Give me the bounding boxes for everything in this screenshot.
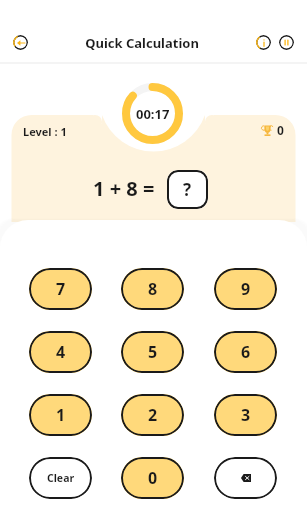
staticText: 8 — [148, 278, 158, 300]
button[interactable]: Info — [256, 35, 271, 50]
staticText: 9 — [241, 278, 251, 300]
button[interactable]: 9 — [214, 268, 277, 310]
button[interactable]: Back — [13, 35, 28, 50]
button[interactable]: 2 — [121, 394, 184, 436]
button[interactable]: 5 — [121, 331, 184, 373]
staticText: 5 — [148, 341, 158, 363]
button[interactable]: Pause — [279, 35, 294, 50]
staticText: Quick Calculation — [85, 34, 199, 52]
button[interactable]: 4 — [29, 331, 92, 373]
staticText: 1 + 8 = — [93, 175, 155, 202]
button[interactable]: Clear — [29, 457, 92, 499]
staticText: ? — [183, 178, 192, 201]
staticText: 0 — [148, 467, 158, 489]
staticText: 2 — [148, 404, 158, 426]
staticText: 00:17 — [136, 105, 170, 123]
button[interactable]: 1 — [29, 394, 92, 436]
button[interactable]: Backspace — [214, 457, 277, 499]
staticText: 1 — [56, 404, 66, 426]
staticText: 0 — [277, 122, 284, 138]
staticText: Level : 1 — [23, 124, 67, 139]
staticText: Clear — [47, 471, 75, 485]
staticText: 7 — [56, 278, 66, 300]
button[interactable]: 8 — [121, 268, 184, 310]
button[interactable]: 3 — [214, 394, 277, 436]
staticText: 4 — [56, 341, 66, 363]
button[interactable]: 7 — [29, 268, 92, 310]
staticText: 3 — [241, 404, 251, 426]
button[interactable]: 0 — [121, 457, 184, 499]
button[interactable]: 6 — [214, 331, 277, 373]
staticText: 6 — [241, 341, 251, 363]
